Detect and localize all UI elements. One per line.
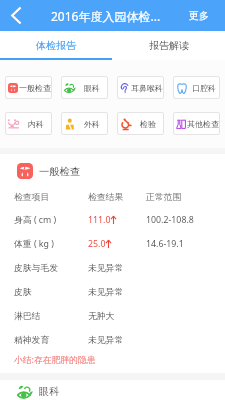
button[interactable]: 一般检查 bbox=[17, 160, 225, 182]
staticText: 淋巴结 bbox=[14, 311, 41, 322]
staticText: 精神发育 bbox=[14, 335, 50, 346]
staticText: 外科 bbox=[84, 119, 100, 129]
button[interactable]: Back bbox=[0, 0, 31, 31]
staticText: 111.0 bbox=[88, 214, 111, 226]
staticText: 小结:存在肥胖的隐患 bbox=[14, 354, 96, 366]
staticText: 检验 bbox=[140, 119, 156, 129]
button[interactable]: 眼科 bbox=[17, 383, 225, 400]
staticText: 皮肤与毛发 bbox=[14, 263, 58, 274]
button[interactable]: 外科 bbox=[61, 112, 108, 135]
staticText: 一般检查 bbox=[19, 83, 51, 93]
staticText: 眼科 bbox=[39, 385, 60, 398]
staticText: 2016年度入园体检... bbox=[51, 8, 161, 24]
button[interactable]: 眼科 bbox=[61, 76, 108, 99]
staticText: 身高 ( cm ) bbox=[14, 214, 57, 226]
staticText: 耳鼻喉科 bbox=[131, 83, 163, 93]
staticText: 无肿大 bbox=[88, 311, 115, 322]
staticText: 更多 bbox=[189, 9, 209, 22]
button[interactable]: 一般检查 bbox=[5, 76, 52, 99]
button[interactable]: 耳鼻喉科 bbox=[117, 76, 164, 99]
staticText: 眼科 bbox=[84, 83, 100, 93]
staticText: 口腔科 bbox=[192, 83, 216, 93]
button[interactable]: 更多 bbox=[189, 0, 209, 31]
staticText: 皮肤 bbox=[14, 287, 32, 298]
staticText: 100.2-108.8 bbox=[146, 214, 194, 226]
button[interactable]: 内科 bbox=[5, 112, 52, 135]
staticText: 体重 ( kg ) bbox=[14, 238, 54, 250]
staticText: 报告解读 bbox=[149, 39, 189, 52]
button[interactable]: 其他检查 bbox=[173, 112, 220, 135]
staticText: 25.0 bbox=[88, 238, 106, 250]
staticText: 未见异常 bbox=[88, 287, 124, 298]
button[interactable]: 口腔科 bbox=[173, 76, 220, 99]
staticText: 未见异常 bbox=[88, 263, 124, 274]
button[interactable]: 体检报告 bbox=[0, 31, 112, 60]
staticText: 体检报告 bbox=[36, 39, 76, 52]
button[interactable]: 检验 bbox=[117, 112, 164, 135]
staticText: 未见异常 bbox=[88, 335, 124, 346]
staticText: 正常范围 bbox=[146, 192, 182, 203]
staticText: 14.6-19.1 bbox=[146, 238, 184, 250]
staticText: 一般检查 bbox=[39, 165, 81, 178]
staticText: 其他检查 bbox=[187, 119, 219, 129]
button[interactable]: 报告解读 bbox=[112, 31, 225, 60]
staticText: 检查结果 bbox=[88, 192, 124, 203]
staticText: 内科 bbox=[28, 119, 44, 129]
staticText: 检查项目 bbox=[14, 192, 50, 203]
